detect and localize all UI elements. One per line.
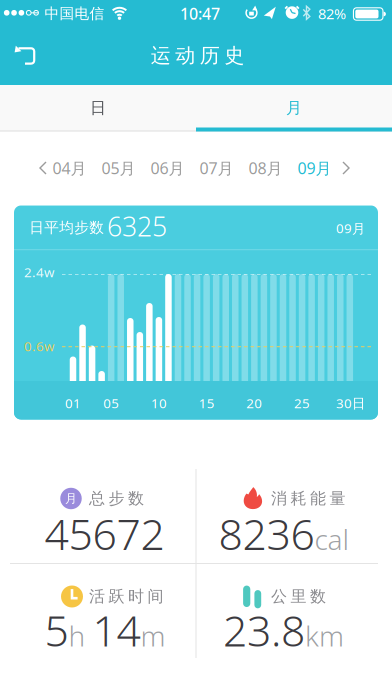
staticText: 月 — [65, 491, 77, 506]
staticText: 23.8 — [223, 602, 305, 658]
staticText: cal — [314, 521, 349, 558]
staticText: 日 — [90, 98, 106, 118]
button[interactable]: 09月 — [291, 151, 337, 185]
staticText: 10 — [151, 394, 167, 412]
button[interactable]: 下一页 — [335, 160, 357, 176]
staticText: 82% — [318, 4, 346, 23]
staticText: 05 — [103, 394, 119, 412]
staticText: km — [305, 617, 344, 654]
staticText: 10:47 — [180, 3, 220, 24]
staticText: 45672 — [44, 505, 164, 562]
button[interactable]: 08月 — [242, 151, 288, 185]
staticText: 04月 — [52, 157, 86, 179]
staticText: 5 — [44, 602, 68, 658]
staticText: 8236 — [218, 505, 314, 562]
staticText: 活跃时间 — [89, 587, 163, 606]
staticText: 15 — [199, 394, 215, 412]
button[interactable]: 日 — [0, 85, 196, 131]
staticText: 09月 — [336, 219, 365, 237]
staticText: 2.4w — [24, 263, 54, 281]
button[interactable]: 05月 — [95, 151, 141, 185]
staticText: 20 — [246, 394, 262, 412]
button[interactable]: 04月 — [46, 151, 92, 185]
staticText: h — [68, 617, 85, 654]
staticText: 01 — [65, 394, 81, 412]
staticText: 月 — [286, 98, 302, 118]
staticText: 日平均步数 — [29, 219, 104, 237]
button[interactable]: 上一页 — [32, 160, 54, 176]
button[interactable]: 06月 — [144, 151, 190, 185]
button[interactable]: 07月 — [193, 151, 239, 185]
staticText: 14 — [92, 602, 140, 658]
staticText: 运动历史 — [151, 43, 244, 68]
staticText: 0.6w — [24, 337, 54, 355]
staticText: 消耗能量 — [271, 489, 345, 508]
staticText: 25 — [294, 394, 310, 412]
staticText: 07月 — [199, 157, 233, 179]
staticText: 05月 — [101, 157, 135, 179]
staticText: m — [140, 617, 165, 654]
staticText: 中国电信 — [44, 4, 104, 22]
staticText: 6325 — [107, 208, 167, 244]
staticText: 08月 — [248, 157, 282, 179]
staticText: 09月 — [297, 157, 331, 179]
staticText: 总步数 — [89, 489, 144, 508]
staticText: 30日 — [336, 394, 365, 412]
button[interactable]: 月 — [196, 85, 392, 131]
staticText: 06月 — [150, 157, 184, 179]
staticText: 公里数 — [271, 587, 326, 606]
button[interactable]: 返回 — [3, 34, 47, 78]
